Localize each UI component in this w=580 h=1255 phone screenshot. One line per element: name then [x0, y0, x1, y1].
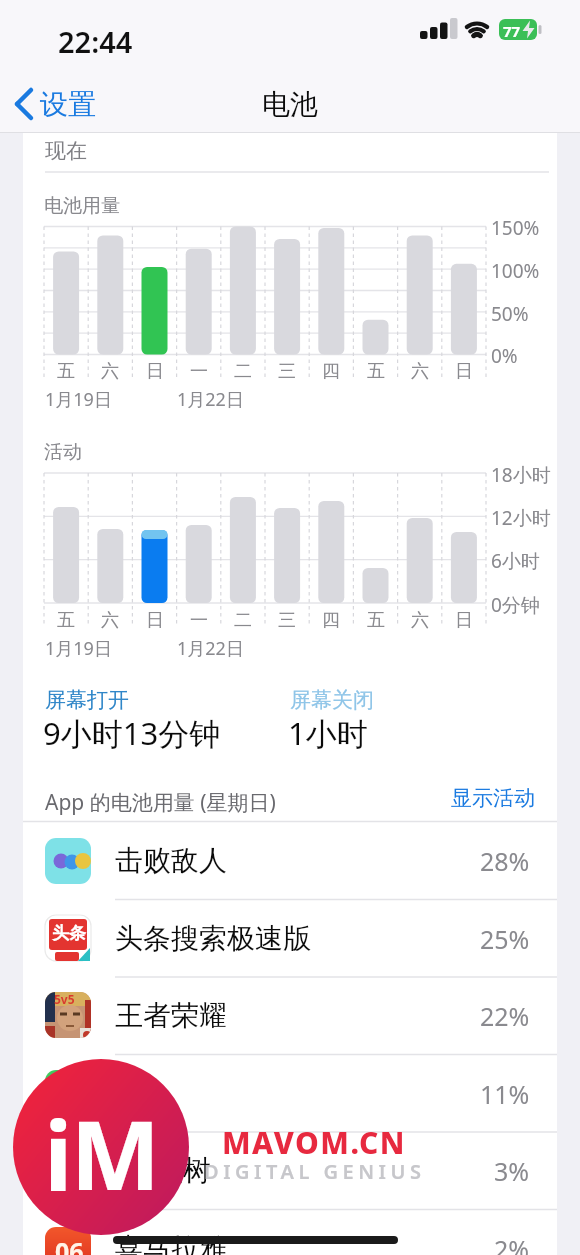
staticText: 王者荣耀 [115, 998, 227, 1033]
staticText: 1月19日 [45, 636, 112, 661]
staticText: 12小时 [491, 505, 551, 531]
staticText: 22:44 [58, 22, 133, 61]
button[interactable]: 头条搜索极速版 [23, 900, 557, 977]
staticText: 100% [491, 258, 540, 284]
button[interactable]: 喜马拉雅 [23, 1210, 557, 1255]
staticText: 日 [455, 609, 473, 632]
staticText: 9小时13分钟 [43, 712, 221, 754]
staticText: 28% [480, 844, 530, 878]
staticText: iM [44, 1088, 158, 1217]
staticText: 摇钱树 [127, 1153, 211, 1188]
staticText: 三 [278, 360, 296, 383]
staticText: 四 [322, 609, 340, 632]
staticText: 1月19日 [45, 387, 112, 412]
staticText: DIGITAL GENIUS [204, 1158, 426, 1185]
button[interactable]: 设置 [10, 80, 115, 126]
button[interactable]: 王者荣耀 [23, 977, 557, 1054]
staticText: 微信 [109, 1077, 163, 1111]
staticText: 3% [494, 1154, 530, 1188]
staticText: 25% [480, 922, 530, 956]
staticText: 六 [411, 360, 429, 383]
staticText: 6小时 [491, 548, 540, 574]
staticText: 5v5 [54, 991, 75, 1007]
staticText: 二 [234, 609, 252, 632]
staticText: 77 [503, 21, 521, 41]
staticText: MAVOM.CN [222, 1122, 406, 1163]
staticText: 活动 [44, 440, 82, 464]
staticText: 屏幕打开 [45, 687, 129, 713]
staticText: 五 [367, 360, 385, 383]
staticText: 电池用量 [44, 194, 120, 218]
button[interactable]: 击败敌人 [23, 822, 557, 899]
staticText: 喜马拉雅 [115, 1231, 227, 1255]
staticText: 四 [322, 360, 340, 383]
staticText: 2% [494, 1232, 530, 1255]
staticText: 现在 [45, 138, 87, 164]
staticText: 150% [491, 215, 540, 241]
staticText: 显示活动 [451, 785, 535, 811]
staticText: 六 [411, 609, 429, 632]
staticText: 设置 [40, 87, 96, 122]
staticText: 五 [57, 360, 75, 383]
staticText: 50% [491, 301, 529, 327]
staticText: 日 [146, 360, 164, 383]
staticText: 日 [455, 360, 473, 383]
staticText: 三 [278, 609, 296, 632]
staticText: 22% [480, 999, 530, 1033]
staticText: 五 [57, 609, 75, 632]
staticText: 0% [491, 343, 518, 369]
button[interactable]: 微信 [23, 1055, 557, 1132]
staticText: 五 [367, 609, 385, 632]
staticText: 击败敌人 [115, 843, 227, 878]
staticText: 日 [146, 609, 164, 632]
staticText: 六 [101, 609, 119, 632]
staticText: 06 [55, 1234, 84, 1255]
staticText: 1月22日 [177, 636, 244, 661]
staticText: 一 [190, 360, 208, 383]
staticText: 0分钟 [491, 592, 540, 618]
staticText: 18小时 [491, 462, 551, 488]
staticText: 头条搜索极速版 [115, 921, 311, 956]
staticText: 1月22日 [177, 387, 244, 412]
staticText: 电池 [262, 87, 318, 122]
staticText: 二 [234, 360, 252, 383]
staticText: 一 [190, 609, 208, 632]
button[interactable]: 摇钱树 [23, 1132, 557, 1209]
staticText: 1小时 [288, 712, 368, 754]
button[interactable]: 显示活动 [420, 780, 540, 816]
staticText: 屏幕关闭 [290, 687, 374, 713]
staticText: 六 [101, 360, 119, 383]
staticText: 头条 [52, 923, 86, 944]
staticText: App 的电池用量 (星期日) [45, 788, 276, 817]
staticText: 11% [480, 1077, 530, 1111]
